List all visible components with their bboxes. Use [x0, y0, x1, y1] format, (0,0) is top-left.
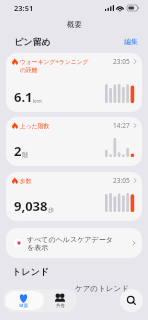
staticText: 9,038 — [14, 197, 48, 215]
button[interactable]: 歩数 — [6, 172, 142, 221]
staticText: 14:27 — [113, 121, 130, 130]
button[interactable]: 編集 — [124, 37, 138, 46]
staticText: ピン留め — [14, 36, 51, 47]
button[interactable]: 共有 — [43, 289, 77, 312]
staticText: すべてのヘルスケアデータ を表示 — [27, 235, 132, 252]
staticText: 編集 — [124, 37, 138, 46]
staticText: 2 — [14, 142, 22, 160]
staticText: 23:51 — [14, 3, 34, 13]
staticText: 6.1 — [14, 88, 33, 106]
staticText: 歩数 — [20, 177, 113, 184]
staticText: 健康 — [19, 303, 28, 309]
staticText: トレンド — [12, 266, 49, 277]
staticText: 共有 — [56, 303, 65, 309]
button[interactable]: 健康 — [3, 289, 43, 312]
button[interactable]: 上った階数 — [6, 117, 142, 166]
staticText: 階 — [22, 151, 28, 159]
staticText: 23:05 — [113, 176, 130, 185]
staticText: 概要 — [67, 20, 82, 29]
button[interactable]: 検索 — [120, 289, 143, 312]
staticText: km — [33, 97, 42, 105]
staticText: 歩 — [48, 206, 54, 214]
staticText: 上った階数 — [20, 122, 113, 129]
staticText: ウォーキング+ランニング の距離 — [20, 58, 113, 74]
button[interactable]: ウォーキング+ランニング の距離 — [6, 53, 142, 112]
button[interactable]: すべてのヘルスケアデータ を表示 — [6, 228, 142, 258]
staticText: ケアのトレンド — [75, 284, 129, 293]
staticText: 23:05 — [113, 57, 130, 66]
